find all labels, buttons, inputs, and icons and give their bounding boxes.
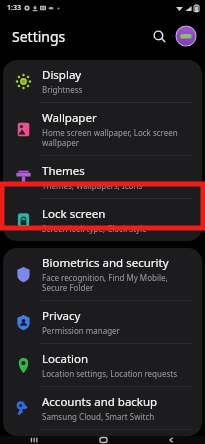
staticText: Permission manager xyxy=(42,325,120,336)
button[interactable]: Search xyxy=(147,24,171,48)
button[interactable]: Recents xyxy=(0,436,69,444)
button[interactable]: Account xyxy=(175,25,197,47)
staticText: Brightness xyxy=(42,84,83,95)
staticText: Themes, Wallpapers, Icons xyxy=(42,180,143,191)
button[interactable]: Lock screen xyxy=(3,199,202,241)
staticText: Samsung Cloud, Smart Switch xyxy=(42,411,155,422)
staticText: Accounts and backup xyxy=(42,394,158,410)
button[interactable]: Wallpaper xyxy=(3,103,202,155)
staticText: 1:33 xyxy=(7,3,21,13)
button[interactable]: Themes xyxy=(3,156,202,198)
staticText: Lock screen xyxy=(42,206,106,222)
staticText: Settings xyxy=(12,27,66,46)
staticText: Location xyxy=(42,351,89,367)
button[interactable]: Back xyxy=(137,436,205,444)
staticText: Face recognition, Find My Mobile, Secure… xyxy=(42,272,192,293)
button[interactable]: Privacy xyxy=(3,301,202,343)
staticText: Themes xyxy=(42,163,85,179)
staticText: Screen lock type, Clock style xyxy=(42,223,147,234)
staticText: Wallpaper xyxy=(42,110,97,126)
staticText: Biometrics and security xyxy=(42,255,169,271)
button[interactable]: Location xyxy=(3,344,202,386)
staticText: Privacy xyxy=(42,308,81,324)
staticText: Home screen wallpaper, Lock screen wallp… xyxy=(42,127,192,148)
staticText: Location settings, Location requests xyxy=(42,368,178,379)
button[interactable]: Display xyxy=(3,60,202,102)
staticText: Display xyxy=(42,67,82,83)
button[interactable]: Home xyxy=(69,436,137,444)
button[interactable]: Biometrics and security xyxy=(3,248,202,300)
button[interactable]: Accounts and backup xyxy=(3,387,202,429)
